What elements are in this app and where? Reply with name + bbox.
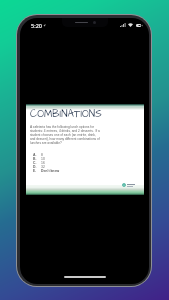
staticText: E. [33, 169, 41, 173]
staticText: 10 [41, 157, 45, 161]
button[interactable]: COMBINATIONS [26, 104, 144, 195]
staticText: A cafeteria has the following lunch opti… [30, 125, 101, 145]
staticText: 8 [41, 153, 43, 157]
staticText: C. [33, 161, 41, 165]
staticText: 16 [41, 161, 45, 165]
staticText: COMBINATIONS [30, 107, 102, 121]
staticText: 5:20 [31, 22, 42, 29]
staticText: Don't know [41, 169, 60, 173]
staticText: A. [33, 153, 41, 157]
staticText: 32 [41, 165, 45, 169]
staticText: D. [33, 165, 41, 169]
staticText: B. [33, 157, 41, 161]
